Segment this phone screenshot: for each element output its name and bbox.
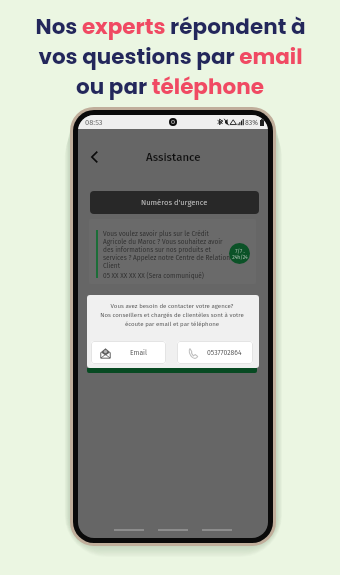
- staticText: 05 XX XX XX XX (Sera communiqué): [103, 272, 204, 280]
- button[interactable]: Vous voulez savoir plus sur le Crédit Ag…: [89, 219, 256, 284]
- staticText: 83%: [245, 118, 259, 126]
- staticText: 7/7 . 24h/24: [232, 248, 248, 260]
- button[interactable]: 0537702864: [177, 341, 253, 364]
- staticText: 08:53: [85, 118, 103, 127]
- staticText: Email: [130, 349, 147, 357]
- staticText: Vous voulez savoir plus sur le Crédit Ag…: [103, 230, 231, 270]
- staticText: 0537702864: [207, 349, 242, 357]
- button[interactable]: Back: [84, 147, 104, 167]
- staticText: Vous avez besoin de contacter votre agen…: [100, 302, 244, 327]
- staticText: Assistance: [146, 150, 201, 164]
- button[interactable]: Numéros d'urgence: [90, 191, 259, 214]
- staticText: Numéros d'urgence: [141, 198, 208, 207]
- staticText: Nos experts répondent à: [35, 11, 306, 41]
- staticText: vos questions par email: [38, 41, 303, 71]
- button[interactable]: Email: [91, 341, 166, 364]
- staticText: ou par téléphone: [76, 71, 264, 101]
